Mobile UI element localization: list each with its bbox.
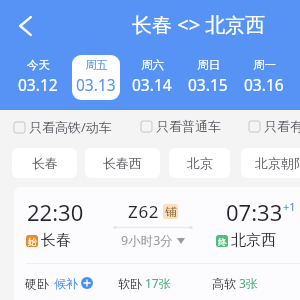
staticText: 周日	[197, 58, 220, 72]
staticText: 候补	[54, 276, 78, 291]
staticText: 铺	[165, 205, 177, 219]
staticText: 始	[28, 236, 37, 247]
staticText: 软卧	[118, 276, 142, 291]
staticText: 9小时3分	[121, 232, 173, 249]
button[interactable]: 周一	[240, 55, 288, 100]
staticText: 长春	[32, 155, 58, 171]
staticText: 只看普通车	[156, 118, 221, 134]
button[interactable]	[14, 187, 300, 300]
staticText: 硬卧	[25, 276, 49, 291]
button[interactable]: 只看高铁/动车	[14, 118, 112, 136]
staticText: 北京西	[231, 231, 276, 250]
staticText: 周一	[253, 58, 276, 72]
staticText: 长春	[41, 231, 71, 250]
button[interactable]: 周日	[184, 55, 232, 100]
button[interactable]: Back	[13, 13, 39, 39]
staticText: 22:30	[27, 197, 84, 227]
staticText: 03.16	[244, 74, 284, 95]
button[interactable]: 只看有	[249, 118, 300, 134]
staticText: 长春西	[103, 155, 142, 171]
staticText: 只看高铁/动车	[29, 118, 112, 136]
staticText: 03.14	[132, 74, 172, 95]
staticText: 今天	[27, 58, 50, 72]
button[interactable]: 北京朝阳	[241, 148, 300, 178]
staticText: 北京朝阳	[255, 155, 300, 171]
staticText: +1	[283, 199, 296, 214]
button[interactable]: 长春	[12, 148, 77, 178]
staticText: 高软	[212, 276, 236, 291]
staticText: 17张	[145, 275, 171, 291]
staticText: 只看有	[264, 118, 300, 134]
button[interactable]: 周六	[128, 55, 176, 100]
staticText: 03.15	[188, 74, 228, 95]
staticText: 周五	[85, 58, 108, 72]
staticText: 北京	[187, 155, 213, 171]
button[interactable]: 只看普通车	[141, 118, 221, 134]
button[interactable]: 今天	[14, 55, 62, 100]
staticText: 长春 <> 北京西	[132, 11, 266, 38]
button[interactable]: 长春西	[85, 148, 160, 178]
button[interactable]: 周五	[72, 55, 120, 100]
button[interactable]: 北京	[169, 148, 230, 178]
staticText: 03.13	[76, 74, 116, 95]
staticText: Z62	[128, 200, 160, 223]
staticText: 07:33	[226, 197, 283, 227]
staticText: 终	[218, 236, 227, 247]
staticText: 周六	[141, 58, 164, 72]
staticText: 3张	[239, 275, 258, 291]
staticText: 03.12	[18, 74, 58, 95]
